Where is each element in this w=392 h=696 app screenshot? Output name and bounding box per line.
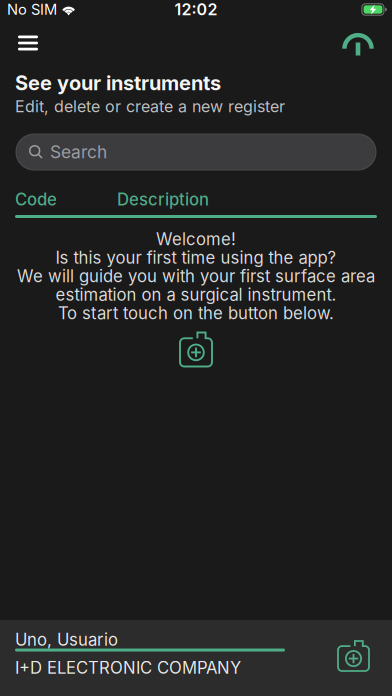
staticText: We will guide you with your first surfac…	[17, 266, 375, 286]
staticText: Edit, delete or create a new register	[15, 97, 285, 116]
staticText: Code	[15, 189, 57, 210]
staticText: See your instruments	[15, 71, 221, 95]
staticText: Welcome!	[156, 229, 236, 249]
button[interactable]: Home	[338, 28, 374, 58]
button[interactable]: Menu	[18, 28, 54, 58]
staticText: Search	[50, 141, 107, 162]
button[interactable]: Add instrument	[331, 634, 376, 678]
staticText: estimation on a surgical instrument.	[55, 285, 336, 305]
staticText: I+D ELECTRONIC COMPANY	[15, 657, 241, 678]
staticText: To start touch on the button below.	[58, 303, 334, 323]
staticText: No SIM	[7, 1, 57, 18]
staticText: Is this your first time using the app?	[55, 248, 336, 268]
staticText: Description	[117, 189, 209, 210]
staticText: Uno, Usuario	[15, 629, 118, 650]
staticText: 12:02	[174, 0, 217, 19]
button[interactable]: Add instrument	[174, 326, 218, 372]
